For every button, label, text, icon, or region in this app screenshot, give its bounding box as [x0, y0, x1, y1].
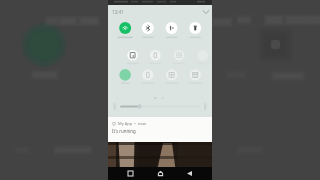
- staticText: It's running: [112, 128, 136, 134]
- button[interactable]: Recents: [124, 167, 137, 180]
- staticText: My App • now: [118, 121, 146, 126]
- staticText: 12:41: [112, 9, 124, 15]
- button[interactable]: Back: [183, 167, 196, 180]
- button[interactable]: Quick settings: [108, 5, 212, 117]
- button[interactable]: Home: [154, 167, 167, 180]
- button[interactable]: Collapse: [201, 7, 211, 17]
